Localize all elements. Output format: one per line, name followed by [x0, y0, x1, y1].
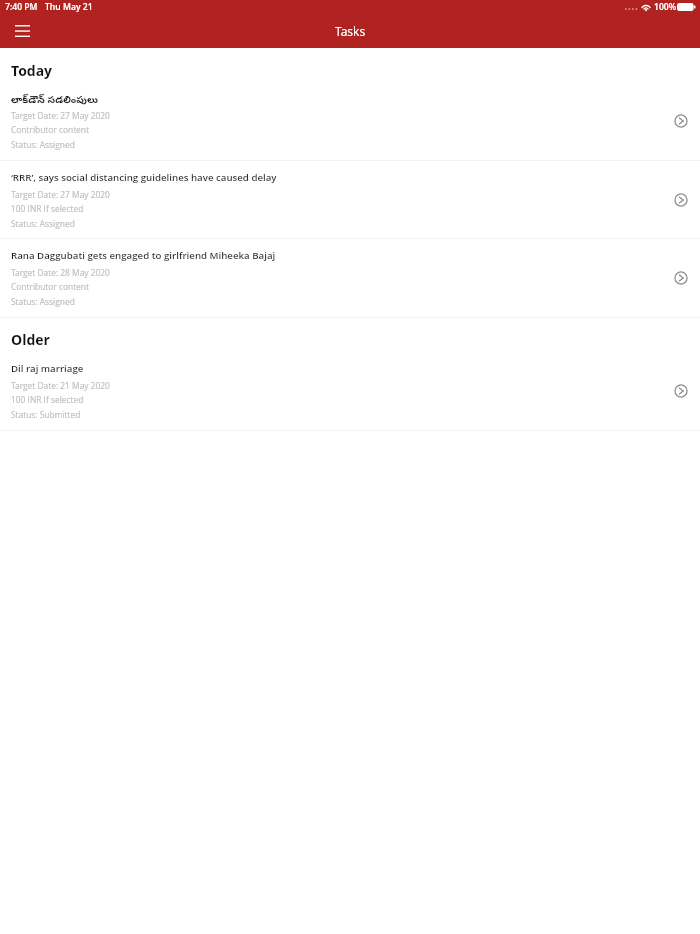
button[interactable]: Rana Daggubati gets engaged to girlfrien…	[0, 239, 700, 317]
staticText: ‘RRR’, says social distancing guidelines…	[11, 171, 651, 184]
button[interactable]: Open task details	[668, 187, 694, 213]
staticText: 100 INR If selected	[11, 203, 84, 214]
button[interactable]: Dil raj marriage	[0, 352, 700, 430]
staticText: 100%	[654, 1, 677, 13]
staticText: Status: Assigned	[11, 218, 75, 229]
button[interactable]: Open navigation drawer	[7, 17, 38, 48]
staticText: Dil raj marriage	[11, 362, 651, 375]
button[interactable]: ‘RRR’, says social distancing guidelines…	[0, 161, 700, 238]
staticText: Status: Assigned	[11, 139, 75, 150]
staticText: Target Date: 27 May 2020	[11, 110, 110, 121]
button[interactable]: Open task details	[668, 265, 694, 291]
staticText: Target Date: 27 May 2020	[11, 189, 110, 200]
staticText: 100 INR If selected	[11, 394, 84, 405]
staticText: 7:40 PM	[5, 1, 38, 13]
staticText: Target Date: 28 May 2020	[11, 267, 110, 278]
button[interactable]: లాక్‌డౌన్ సడలింపులు	[0, 82, 700, 160]
staticText: Target Date: 21 May 2020	[11, 380, 110, 391]
button[interactable]: Today	[11, 61, 53, 80]
staticText: Contributor content	[11, 124, 89, 135]
button[interactable]: Open task details	[668, 108, 694, 134]
staticText: Rana Daggubati gets engaged to girlfrien…	[11, 249, 651, 262]
button[interactable]: Older	[11, 330, 50, 349]
staticText: Thu May 21	[45, 1, 93, 13]
staticText: Tasks	[335, 23, 366, 39]
staticText: Contributor content	[11, 281, 89, 292]
staticText: Status: Assigned	[11, 296, 75, 307]
button[interactable]: Open task details	[668, 378, 694, 404]
staticText: లాక్‌డౌన్ సడలింపులు	[11, 92, 651, 107]
staticText: Status: Submitted	[11, 409, 81, 420]
